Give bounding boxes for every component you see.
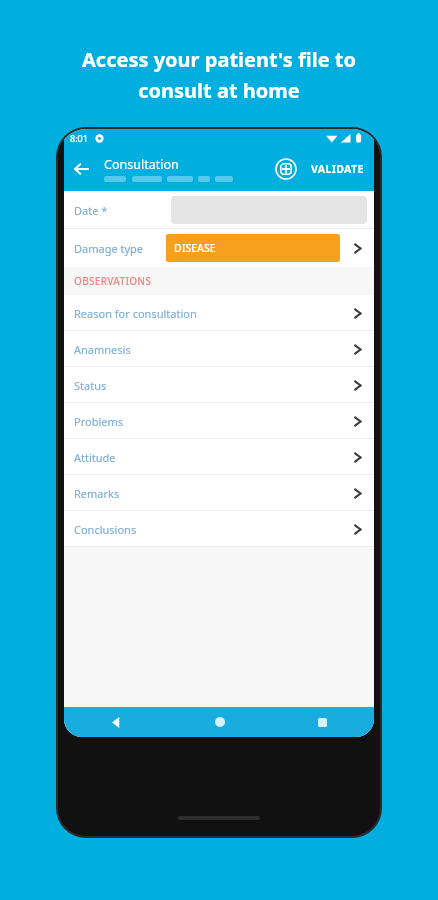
button[interactable]: Remarks — [64, 475, 374, 511]
button[interactable]: Damage type — [64, 229, 374, 267]
staticText: Problems — [74, 414, 123, 429]
button[interactable]: VALIDATE — [303, 162, 372, 176]
button[interactable]: Reason for consultation — [64, 295, 374, 331]
button[interactable]: Anamnesis — [64, 331, 374, 367]
staticText: Attitude — [74, 450, 116, 465]
button[interactable]: Open — [346, 374, 368, 396]
button[interactable]: Back — [64, 707, 168, 737]
button[interactable]: Attitude — [64, 439, 374, 475]
button[interactable]: Open — [346, 518, 368, 540]
staticText: Damage type — [74, 241, 144, 256]
button[interactable]: Open — [346, 302, 368, 324]
staticText: 8:01 — [70, 132, 88, 144]
staticText: consult at home — [138, 77, 300, 104]
button[interactable]: Problems — [64, 403, 374, 439]
button[interactable]: Open — [346, 237, 368, 259]
staticText: OBSERVATIONS — [74, 274, 152, 288]
staticText: DISEASE — [174, 241, 216, 255]
button[interactable]: Back — [64, 152, 98, 186]
staticText: Date * — [74, 203, 108, 218]
button[interactable]: Date * — [64, 191, 374, 229]
staticText: Consultation — [104, 156, 179, 173]
staticText: Status — [74, 378, 107, 393]
button[interactable]: Home — [168, 707, 271, 737]
button[interactable]: Open — [346, 338, 368, 360]
staticText: VALIDATE — [311, 162, 364, 176]
button[interactable]: Open — [346, 482, 368, 504]
button[interactable]: Conclusions — [64, 511, 374, 547]
staticText: Conclusions — [74, 522, 137, 537]
staticText: Anamnesis — [74, 342, 131, 357]
staticText: Remarks — [74, 486, 120, 501]
button[interactable]: Status — [64, 367, 374, 403]
button[interactable]: Recent apps — [271, 707, 374, 737]
staticText: Access your patient's file to — [82, 46, 356, 73]
button[interactable]: Open — [346, 446, 368, 468]
button[interactable]: Patient record — [269, 152, 303, 186]
staticText: Reason for consultation — [74, 306, 197, 321]
button[interactable]: Open — [346, 410, 368, 432]
